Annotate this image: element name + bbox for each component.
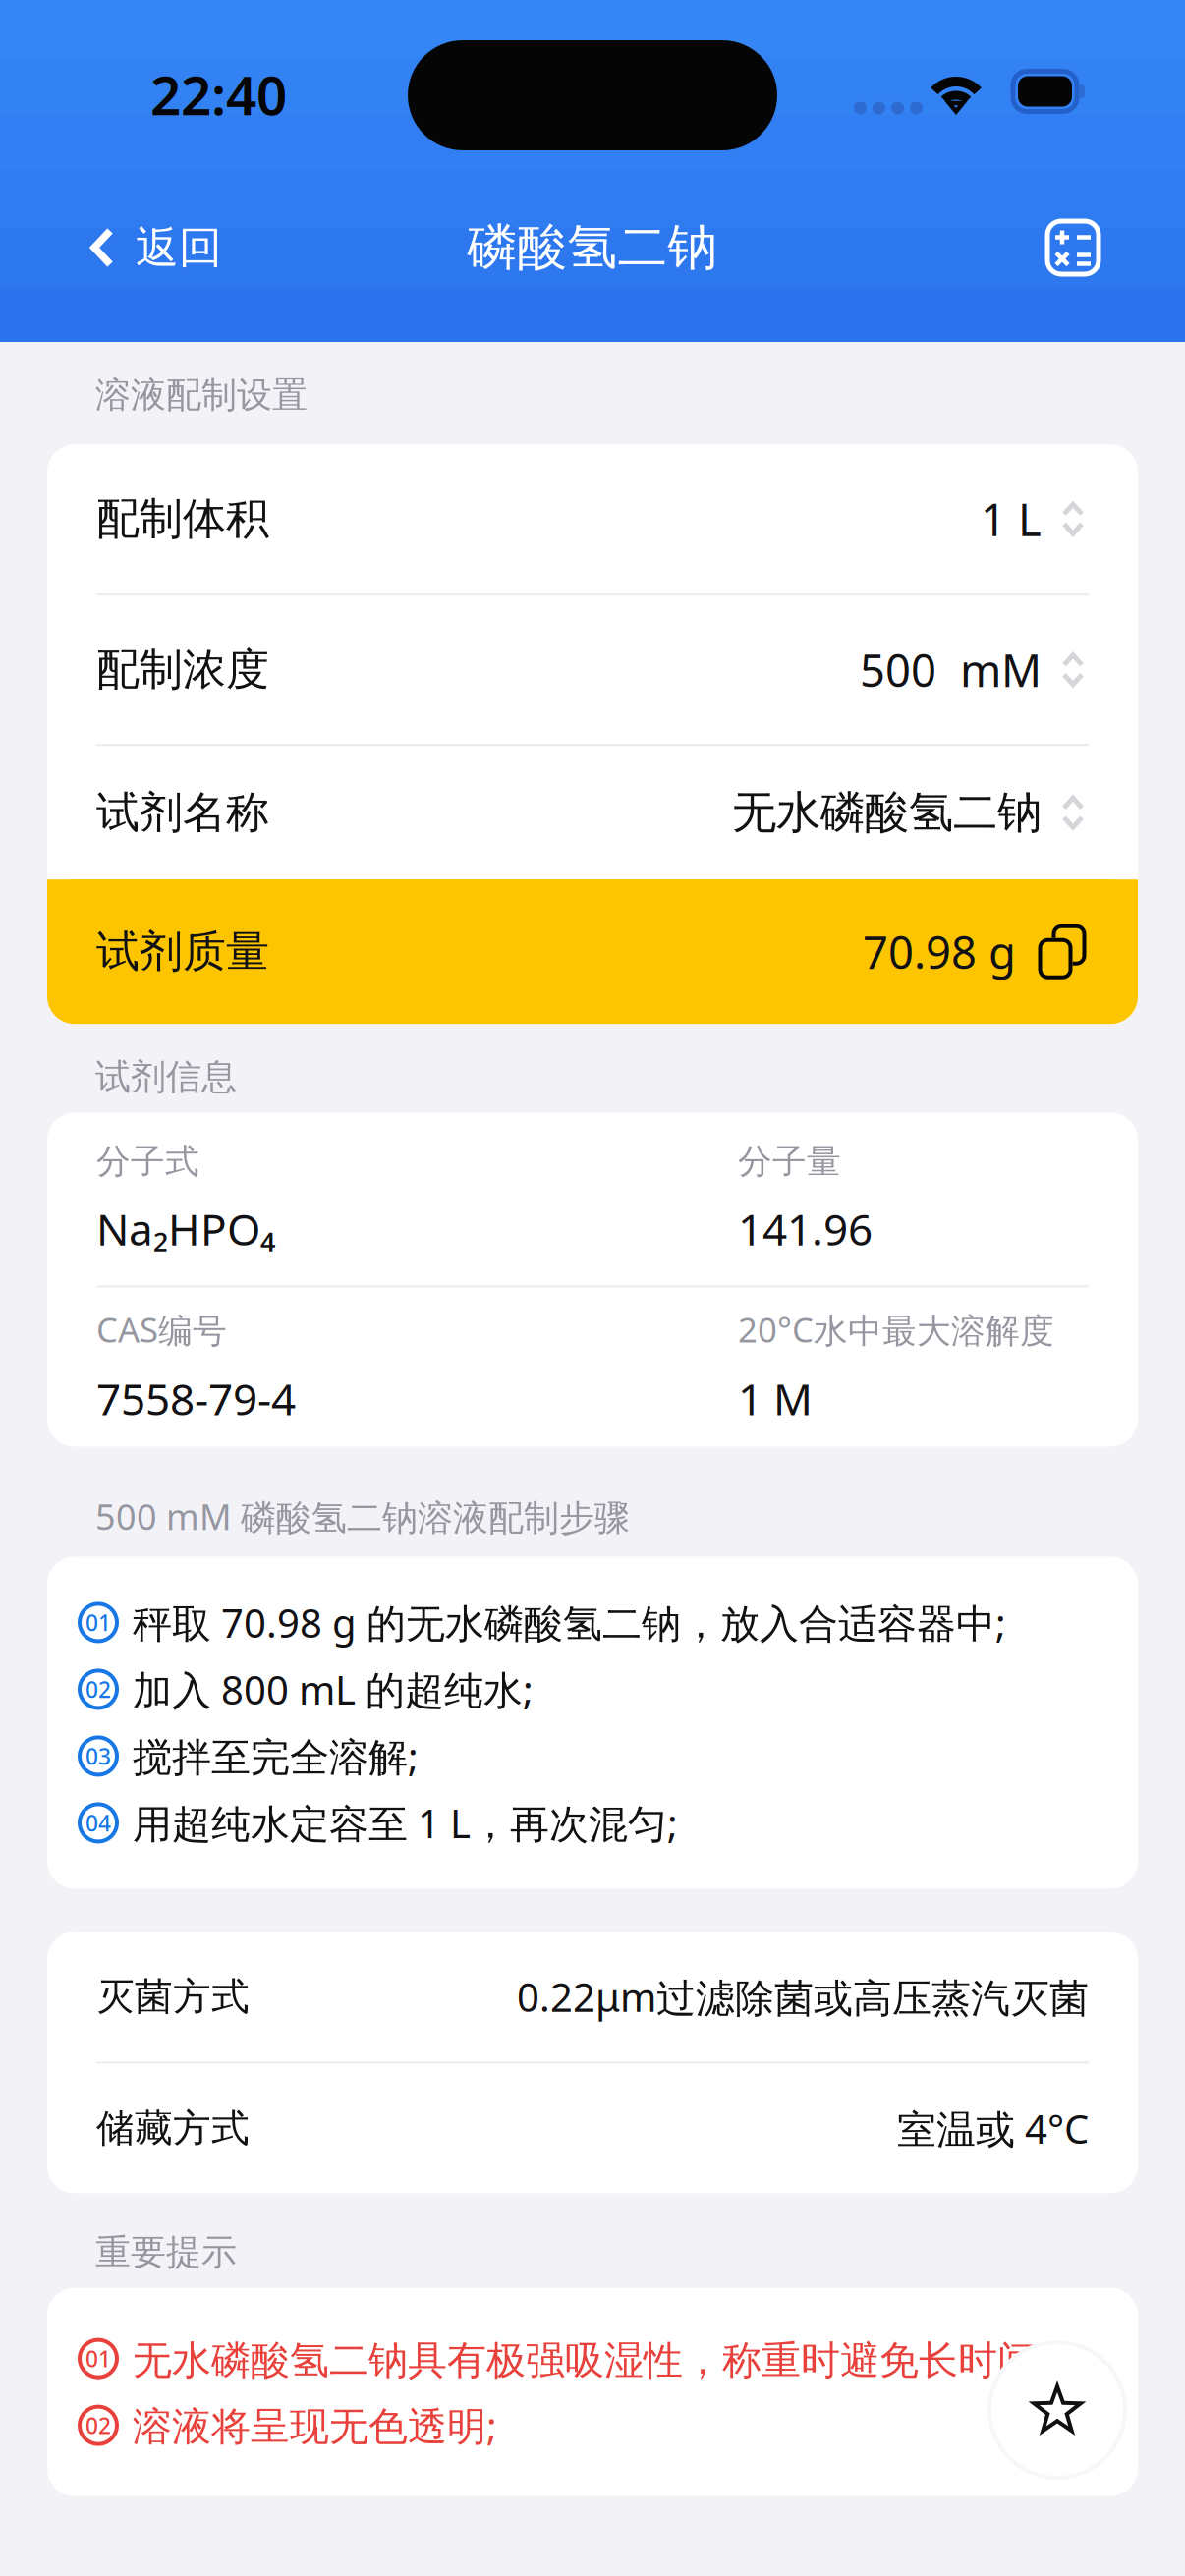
staticText: Na₂HPO₄ xyxy=(96,1200,275,1257)
staticText: 加入 800 mL 的超纯水; xyxy=(133,1663,534,1715)
staticText: 22:40 xyxy=(150,59,287,130)
button[interactable]: 灭菌方式 xyxy=(47,1932,1138,2062)
button[interactable]: 配制浓度 xyxy=(47,596,1138,744)
staticText: 141.96 xyxy=(738,1200,873,1257)
staticText: 分子量 xyxy=(738,1141,841,1182)
staticText: 秤取 70.98 g 的无水磷酸氢二钠，放入合适容器中; xyxy=(133,1596,1006,1649)
staticText: 20°C水中最大溶解度 xyxy=(738,1307,1054,1352)
staticText: 重要提示 xyxy=(95,2231,237,2274)
staticText: 01 xyxy=(85,2344,111,2373)
button[interactable]: 储藏方式 xyxy=(47,2064,1138,2193)
staticText: 02 xyxy=(85,2411,111,2440)
staticText: 试剂质量 xyxy=(96,925,269,978)
staticText: 7558-79-4 xyxy=(96,1370,296,1427)
staticText: 溶液配制设置 xyxy=(95,373,308,417)
staticText: 500 mM 磷酸氢二钠溶液配制步骤 xyxy=(95,1493,630,1540)
staticText: 03 xyxy=(85,1741,111,1771)
staticText: 返回 xyxy=(136,221,222,274)
staticText: 配制体积 xyxy=(96,492,269,545)
staticText: 灭菌方式 xyxy=(96,1973,250,2020)
staticText: 室温或 4°C xyxy=(897,2102,1089,2155)
staticText: 溶液将呈现无色透明; xyxy=(133,2399,497,2451)
staticText: 磷酸氢二钠 xyxy=(467,217,718,278)
staticText: 500 mM xyxy=(860,640,1042,699)
staticText: 01 xyxy=(85,1608,111,1637)
button[interactable]: 计算器 xyxy=(1021,189,1185,307)
staticText: 配制浓度 xyxy=(96,643,269,696)
staticText: 0.22μm过滤除菌或高压蒸汽灭菌 xyxy=(517,1971,1089,2023)
staticText: 无水磷酸氢二钠具有极强吸湿性，称重时避免长时间暴露; xyxy=(133,2332,1102,2385)
staticText: 搅拌至完全溶解; xyxy=(133,1730,419,1782)
staticText: 1 M xyxy=(738,1370,813,1427)
button[interactable]: 试剂质量 xyxy=(47,879,1138,1024)
staticText: 1 L xyxy=(981,489,1042,549)
staticText: 70.98 g xyxy=(863,922,1016,981)
staticText: 试剂信息 xyxy=(95,1055,237,1099)
staticText: 04 xyxy=(85,1808,111,1838)
staticText: CAS编号 xyxy=(96,1307,227,1352)
button[interactable]: 配制体积 xyxy=(47,444,1138,594)
staticText: 试剂名称 xyxy=(96,786,269,839)
staticText: 分子式 xyxy=(96,1141,199,1182)
staticText: 储藏方式 xyxy=(96,2105,250,2152)
button[interactable]: 收藏 xyxy=(987,2340,1127,2480)
button[interactable]: 试剂名称 xyxy=(47,746,1138,879)
staticText: 无水磷酸氢二钠 xyxy=(732,785,1042,840)
button[interactable]: 返回 xyxy=(0,189,246,307)
staticText: 用超纯水定容至 1 L，再次混匀; xyxy=(133,1797,678,1849)
staticText: 02 xyxy=(85,1674,111,1704)
